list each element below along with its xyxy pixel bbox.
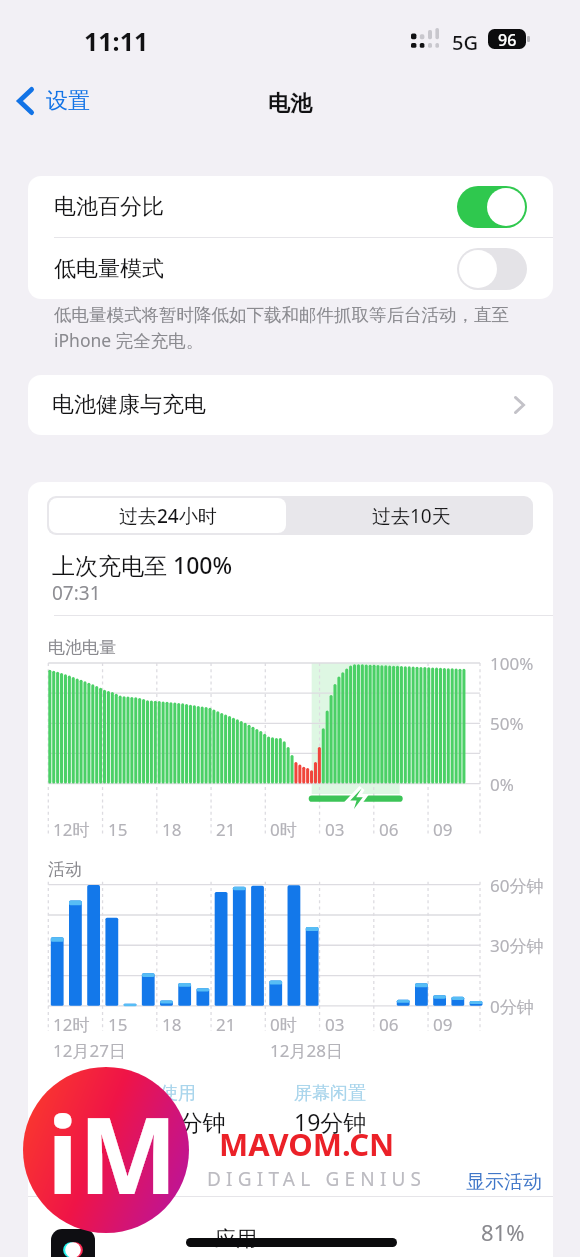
staticText: 15 xyxy=(108,1013,128,1036)
staticText: 0分钟 xyxy=(490,995,534,1018)
staticText: 电池百分比 xyxy=(54,193,164,221)
button[interactable]: 低电量模式 xyxy=(28,238,553,299)
button[interactable]: 电池健康与充电 xyxy=(28,375,553,435)
staticText: 电池电量 xyxy=(48,637,116,658)
staticText: 0% xyxy=(490,773,514,796)
staticText: 06 xyxy=(379,1013,399,1036)
staticText: 12月27日 xyxy=(53,1039,126,1062)
staticText: 屏幕使用 xyxy=(124,1082,196,1105)
staticText: 18 xyxy=(162,1013,182,1036)
button[interactable]: 显示活动 xyxy=(462,1166,546,1198)
staticText: 60分钟 xyxy=(490,874,544,897)
staticText: MAVOM.CN xyxy=(219,1123,395,1165)
staticText: 30分钟 xyxy=(490,934,544,957)
staticText: 低电量模式将暂时降低如下载和邮件抓取等后台活动，直至 iPhone 完全充电。 xyxy=(54,304,509,353)
staticText: 81% xyxy=(481,1217,525,1247)
button[interactable]: On xyxy=(457,186,527,228)
staticText: 电池健康与充电 xyxy=(52,391,206,419)
staticText: 09 xyxy=(433,1013,453,1036)
staticText: 50% xyxy=(490,712,524,735)
staticText: iM xyxy=(47,1082,178,1225)
button[interactable]: Off xyxy=(457,248,527,290)
button[interactable]: App icon xyxy=(51,1229,95,1257)
staticText: 过去24小时 xyxy=(119,503,217,529)
staticText: 15 xyxy=(108,818,128,841)
staticText: 上次充电至 100% xyxy=(52,549,233,580)
staticText: DIGITAL GENIUS xyxy=(207,1166,427,1192)
button[interactable]: 过去24小时 xyxy=(49,498,286,533)
button[interactable]: 设置 xyxy=(11,82,96,120)
staticText: 100% xyxy=(490,652,534,675)
button[interactable]: 电池百分比 xyxy=(28,176,553,237)
staticText: 11:11 xyxy=(84,24,149,58)
staticText: 18 xyxy=(162,818,182,841)
staticText: 电池 xyxy=(268,90,312,118)
staticText: 09 xyxy=(433,818,453,841)
button[interactable]: 过去10天 xyxy=(292,498,531,533)
staticText: 屏幕闲置 xyxy=(294,1082,366,1105)
staticText: 活动 xyxy=(48,859,82,880)
staticText: 低电量模式 xyxy=(54,255,164,283)
staticText: 0时 xyxy=(270,818,297,841)
staticText: 1小时47分钟 xyxy=(94,1106,226,1137)
staticText: 21 xyxy=(216,818,236,841)
staticText: 过去10天 xyxy=(372,503,451,529)
staticText: 06 xyxy=(379,818,399,841)
staticText: 5G xyxy=(452,29,478,56)
staticText: 03 xyxy=(325,818,345,841)
staticText: 0时 xyxy=(270,1013,297,1036)
staticText: 12月28日 xyxy=(270,1039,343,1062)
staticText: 19分钟 xyxy=(294,1106,367,1137)
staticText: 21 xyxy=(216,1013,236,1036)
staticText: 显示活动 xyxy=(466,1170,542,1194)
staticText: 12时 xyxy=(53,818,90,841)
staticText: 03 xyxy=(325,1013,345,1036)
staticText: 设置 xyxy=(46,87,90,115)
staticText: 96 xyxy=(498,29,517,49)
staticText: 07:31 xyxy=(52,580,101,606)
staticText: 12时 xyxy=(53,1013,90,1036)
staticText: 应用 xyxy=(215,1226,257,1252)
